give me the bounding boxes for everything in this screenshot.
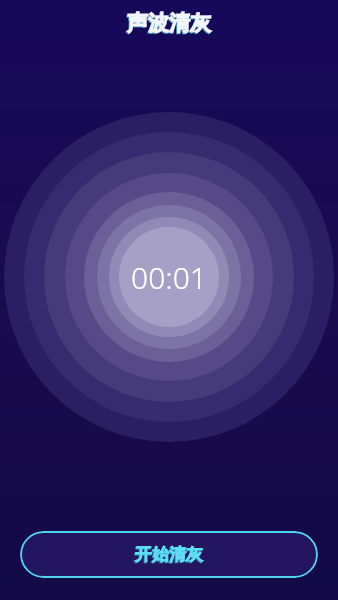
staticText: 开始清灰 [135, 544, 203, 565]
staticText: 00:01 [131, 257, 207, 298]
button[interactable]: 开始清灰 [20, 531, 318, 578]
staticText: 声波清灰 [127, 10, 211, 36]
staticText: 声波清灰 [126, 11, 210, 37]
other: Sound wave cleaning animation [4, 112, 334, 442]
staticText: 开始清灰 [134, 545, 202, 566]
